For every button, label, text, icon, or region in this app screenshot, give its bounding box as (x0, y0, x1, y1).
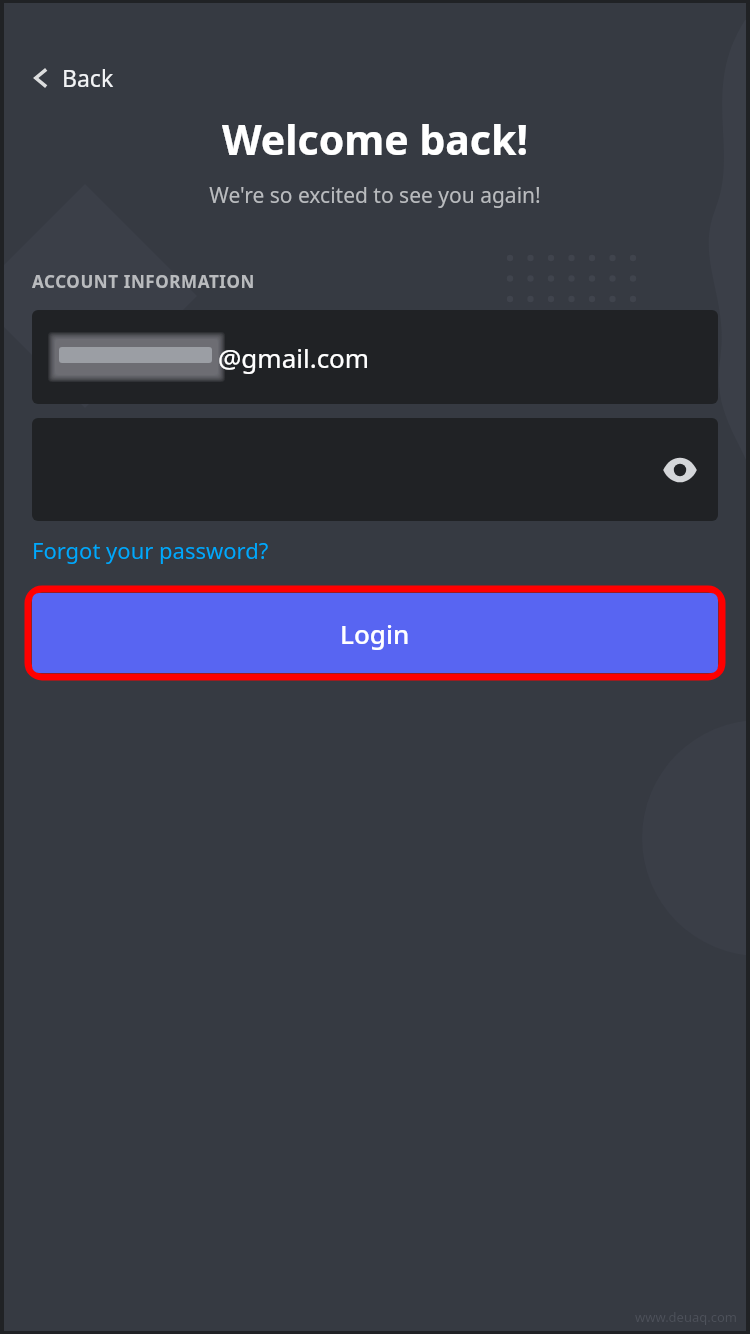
button[interactable]: Show password (32, 418, 718, 521)
staticText: ACCOUNT INFORMATION (32, 270, 255, 293)
button[interactable]: Show password (656, 446, 704, 494)
button[interactable]: Forgot your password? (32, 535, 269, 565)
staticText: Login (340, 616, 410, 651)
button[interactable]: Back (20, 56, 122, 99)
staticText: We're so excited to see you again! (0, 181, 750, 210)
staticText: Welcome back! (0, 111, 750, 167)
staticText: @gmail.com (218, 340, 370, 375)
staticText: Back (62, 62, 114, 93)
staticText: www.deuaq.com (635, 1308, 738, 1326)
button[interactable]: @gmail.com (32, 310, 718, 404)
other: Back (28, 65, 54, 91)
button[interactable]: Login (32, 593, 718, 673)
staticText: Forgot your password? (32, 535, 269, 565)
